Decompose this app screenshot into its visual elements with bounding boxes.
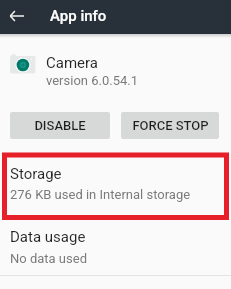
button[interactable]: DISABLE [10,112,110,139]
staticText: App info [50,7,107,25]
button[interactable]: Data usage [0,210,231,275]
button[interactable]: Storage [0,144,231,209]
button[interactable]: Camera [0,40,231,90]
staticText: 276 KB used in Internal storage [10,187,191,202]
button[interactable]: FORCE STOP [121,112,219,139]
staticText: version 6.0.54.1 [46,73,139,88]
staticText: FORCE STOP [132,118,209,133]
button[interactable]: Back [2,2,32,32]
staticText: DISABLE [34,118,86,133]
staticText: Camera [46,54,98,72]
staticText: No data used [10,251,87,266]
staticText: Storage [10,165,62,183]
staticText: Data usage [10,228,86,246]
